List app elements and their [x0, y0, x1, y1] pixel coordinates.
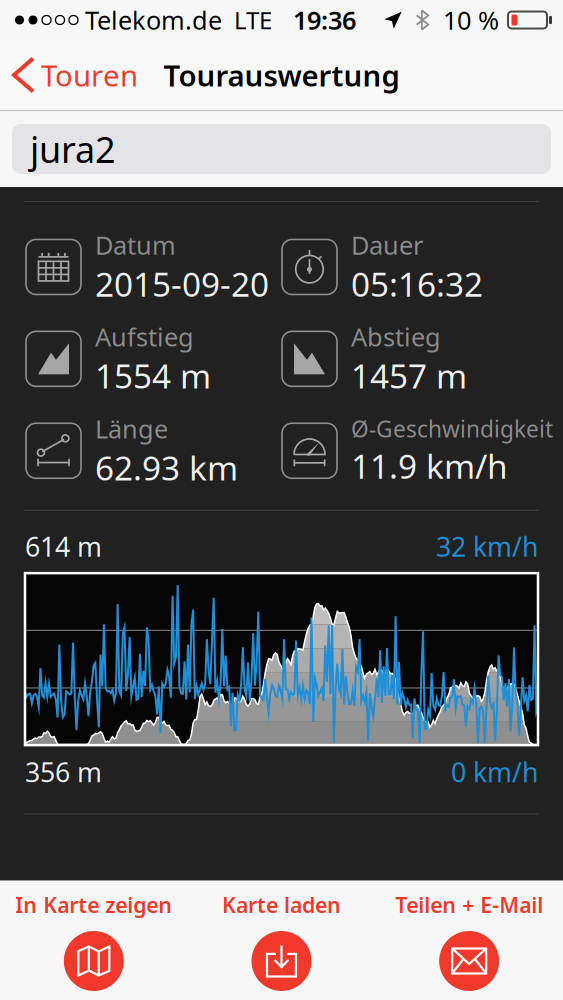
staticText: Teilen + E-Mail: [395, 891, 543, 919]
staticText: 2015-09-20: [95, 262, 269, 306]
staticText: Länge: [95, 412, 168, 445]
staticText: Aufstieg: [95, 320, 194, 353]
staticText: In Karte zeigen: [15, 891, 172, 919]
staticText: Datum: [95, 228, 176, 262]
staticText: Touren: [41, 55, 138, 94]
button[interactable]: In Karte zeigen: [0, 891, 188, 991]
button[interactable]: Teilen + E-Mail: [375, 891, 563, 991]
staticText: LTE: [222, 4, 272, 36]
staticText: Telekom.de: [78, 3, 222, 37]
staticText: Tourauswertung: [163, 55, 399, 94]
staticText: 62.93 km: [95, 445, 238, 490]
staticText: 10 %: [443, 3, 499, 37]
staticText: jura2: [30, 125, 116, 173]
staticText: 11.9 km/h: [351, 444, 508, 488]
button[interactable]: Karte laden: [188, 891, 375, 991]
staticText: 1457 m: [351, 353, 467, 398]
staticText: 356 m: [25, 754, 102, 789]
staticText: Dauer: [351, 228, 423, 262]
staticText: Ø-Geschwindigkeit: [351, 414, 553, 444]
staticText: 05:16:32: [351, 262, 483, 306]
staticText: Karte laden: [222, 891, 341, 919]
staticText: 0 km/h: [451, 754, 538, 789]
staticText: 19:36: [272, 3, 356, 37]
staticText: Abstieg: [351, 320, 441, 353]
staticText: 1554 m: [95, 353, 211, 398]
staticText: 614 m: [25, 529, 102, 564]
button[interactable]: Touren: [0, 40, 148, 110]
staticText: 32 km/h: [436, 529, 538, 564]
